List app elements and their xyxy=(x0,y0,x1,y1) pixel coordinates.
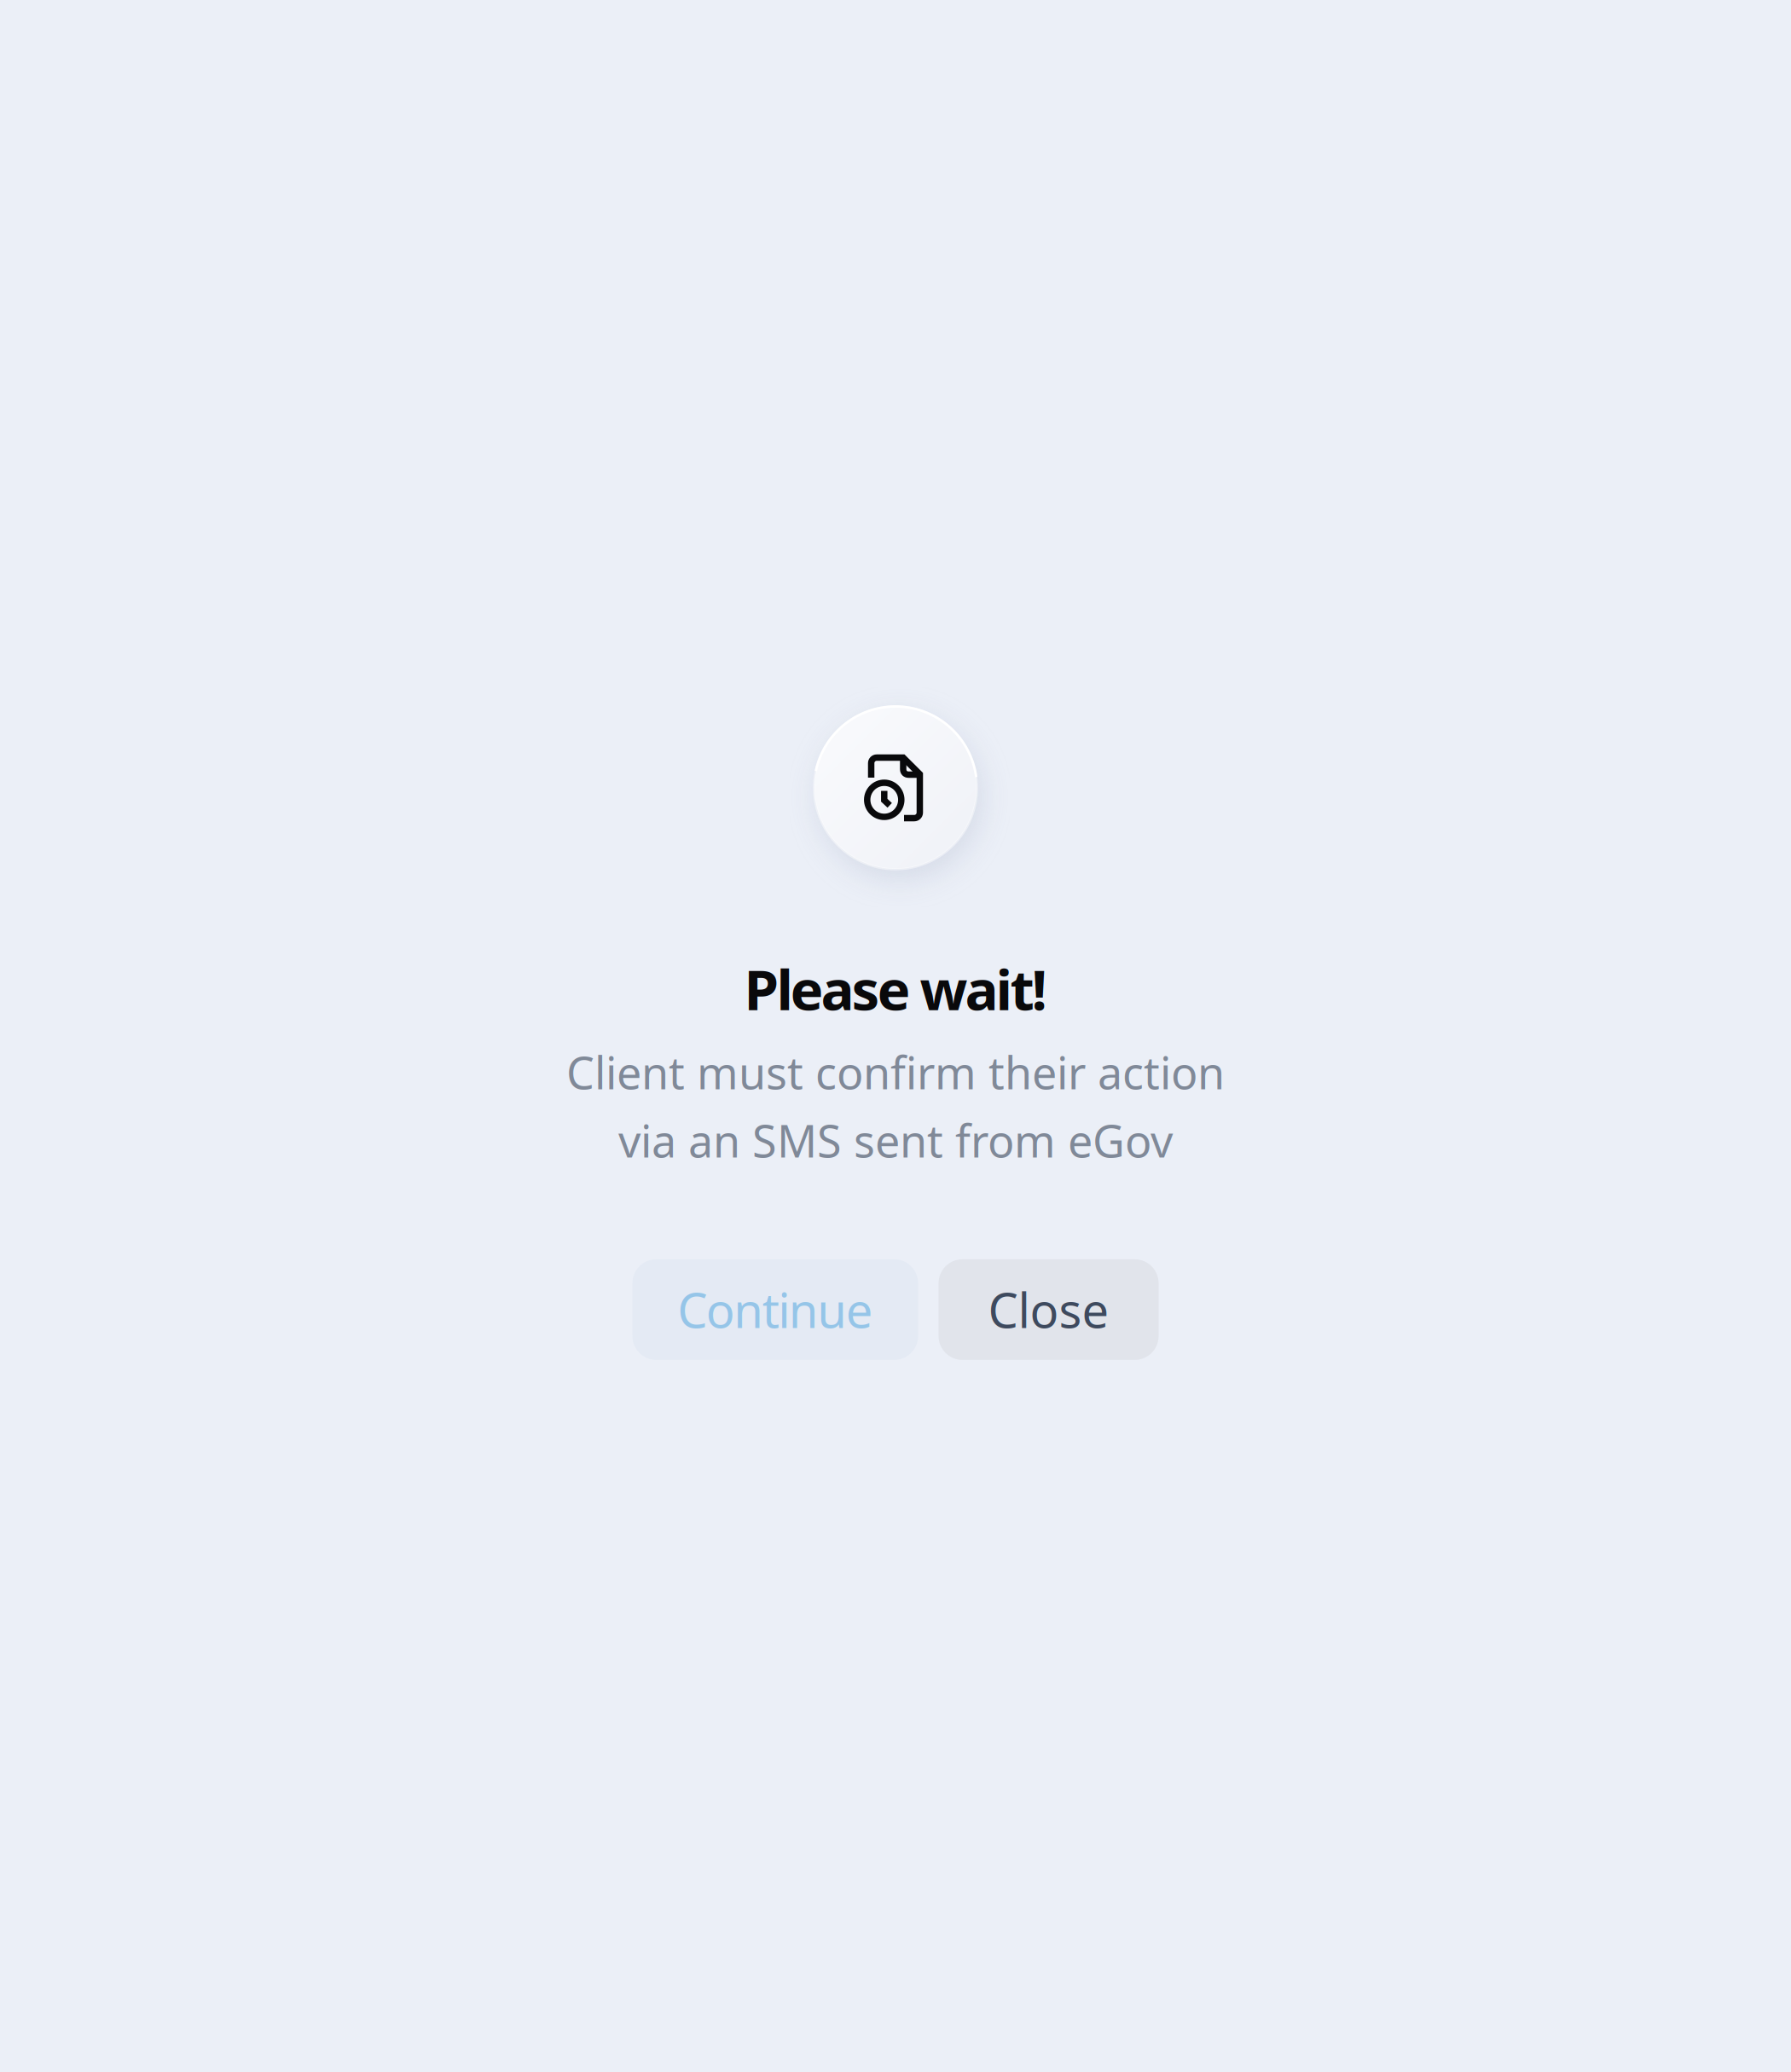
staticText: Please wait! xyxy=(744,952,1047,1026)
staticText: via an SMS sent from eGov xyxy=(618,1111,1173,1170)
button[interactable]: Close xyxy=(939,1259,1159,1360)
button[interactable]: Continue xyxy=(632,1259,918,1360)
staticText: Client must confirm their action xyxy=(566,1043,1225,1102)
staticText: Continue xyxy=(677,1278,873,1341)
staticText: Close xyxy=(988,1278,1109,1341)
